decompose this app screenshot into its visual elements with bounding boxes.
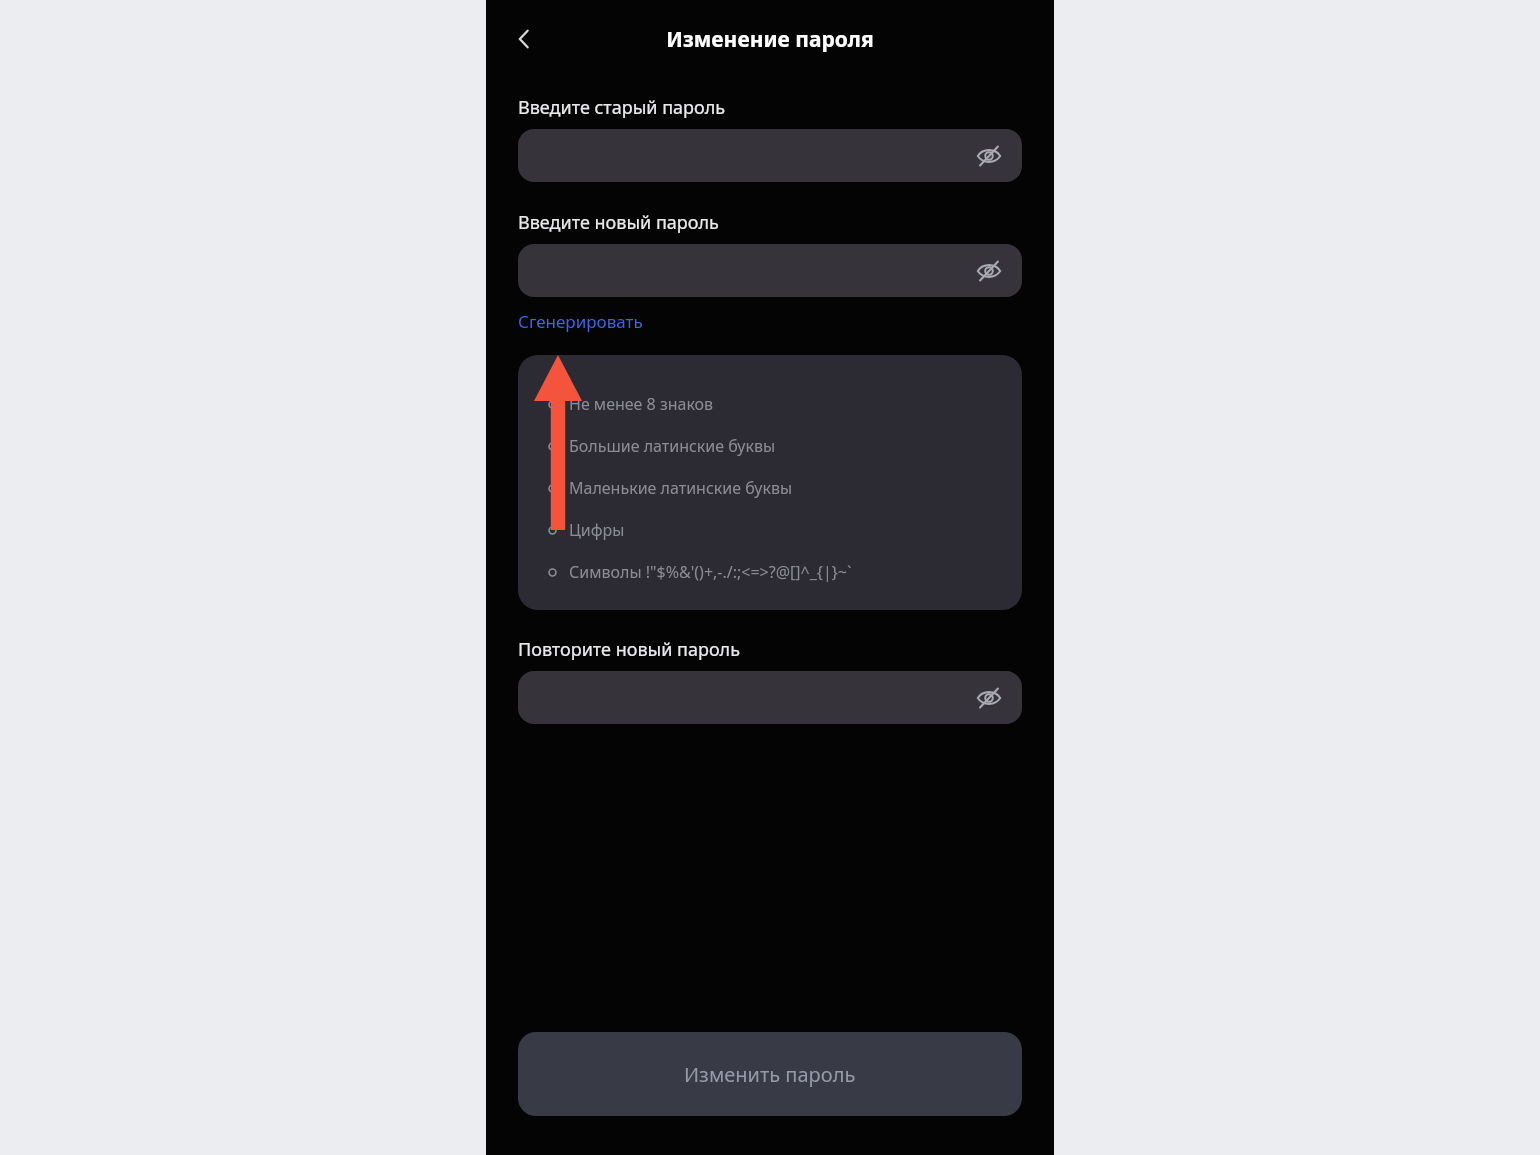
staticText: Символы !"$%&'()+,-./:;<=>?@[]^_{|}~` <box>569 561 852 583</box>
staticText: Цифры <box>569 519 625 541</box>
staticText: Маленькие латинские буквы <box>569 477 793 499</box>
button[interactable]: Сгенерировать <box>518 306 643 337</box>
staticText: Введите новый пароль <box>518 210 719 235</box>
staticText: Введите старый пароль <box>518 95 726 120</box>
staticText: Не менее 8 знаков <box>569 393 714 415</box>
staticText: Повторите новый пароль <box>518 637 740 662</box>
button[interactable]: Изменить пароль <box>518 1032 1022 1116</box>
button[interactable]: Показать пароль <box>518 244 1022 297</box>
button[interactable]: Показать пароль <box>972 254 1006 288</box>
staticText: Изменить пароль <box>684 1061 856 1088</box>
button[interactable]: Показать пароль <box>972 681 1006 715</box>
button[interactable]: Показать пароль <box>972 139 1006 173</box>
staticText: Изменение пароля <box>666 25 874 54</box>
staticText: Сгенерировать <box>518 310 643 333</box>
staticText: Большие латинские буквы <box>569 435 776 457</box>
button[interactable]: Показать пароль <box>518 671 1022 724</box>
button[interactable]: Назад <box>498 13 550 65</box>
button[interactable]: Показать пароль <box>518 129 1022 182</box>
